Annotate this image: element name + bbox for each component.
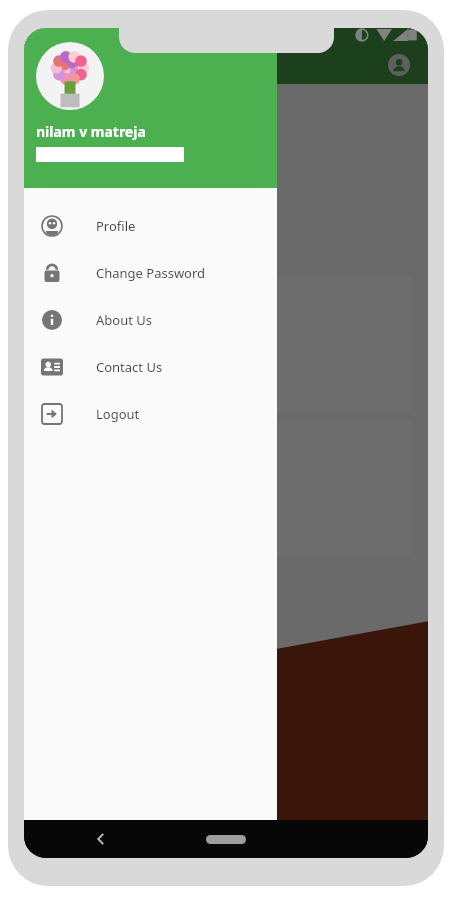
button[interactable]: Donation — [38, 421, 414, 557]
button[interactable]: Change Password — [24, 249, 277, 296]
staticText: Logout — [96, 405, 140, 423]
button[interactable]: Back — [86, 824, 116, 854]
button[interactable]: Contact Us — [24, 343, 277, 390]
button[interactable]: About Us — [24, 296, 277, 343]
button[interactable]: Home — [206, 835, 246, 844]
staticText: About Us — [96, 311, 153, 329]
button[interactable]: Account — [382, 48, 416, 82]
staticText: Profile — [96, 217, 136, 235]
button[interactable]: Logout — [24, 390, 277, 437]
button[interactable] — [36, 42, 104, 110]
button[interactable]: Event — [38, 277, 414, 413]
button[interactable]: Manage Family — [38, 214, 188, 255]
staticText: nilam v matreja — [36, 122, 146, 141]
staticText: Manage Family — [59, 225, 168, 245]
staticText: Change Password — [96, 264, 206, 282]
staticText: Contact Us — [96, 358, 163, 376]
button[interactable]: Profile — [24, 202, 277, 249]
